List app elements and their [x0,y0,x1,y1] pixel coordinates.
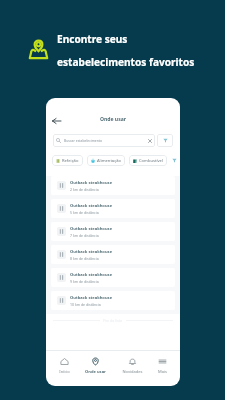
button[interactable]: Onde usar [83,357,108,375]
staticText: Outback steakhouse [70,203,113,209]
staticText: Outback steakhouse [70,295,113,301]
staticText: 2 km de distância [70,187,99,192]
staticText: Buscar estabelecimento [64,138,103,143]
button[interactable]: Mais [156,357,169,375]
button[interactable]: Voltar [50,115,62,127]
button[interactable]: Outback steakhouse [51,291,175,310]
button[interactable]: Outback steakhouse [51,268,175,287]
button[interactable]: Mais filtros [170,156,179,165]
button[interactable]: Novidades [120,357,145,375]
button[interactable]: Início [57,357,72,375]
staticText: Outback steakhouse [70,226,113,232]
staticText: 5 km de distância [70,210,99,215]
staticText: Combustível [139,158,163,164]
staticText: Onde usar [85,369,106,375]
staticText: Outback steakhouse [70,180,113,186]
staticText: Alimentação [97,158,121,164]
button[interactable]: Filtrar [157,134,173,147]
button[interactable]: Alimentação [87,155,125,166]
staticText: 9 km de distância [70,279,99,284]
button[interactable]: Outback steakhouse [51,176,175,195]
staticText: estabelecimentos favoritos [57,55,195,69]
button[interactable]: Refeição [52,155,83,166]
staticText: Encontre seus [57,32,128,46]
button[interactable]: Combustível [129,155,167,166]
button[interactable]: Outback steakhouse [51,245,175,264]
staticText: Novidades [122,369,143,375]
staticText: 10 km de distância [70,302,101,307]
staticText: Outback steakhouse [70,249,113,255]
staticText: Onde usar [46,116,180,123]
staticText: Fim da lista [103,318,123,323]
staticText: Início [59,369,70,375]
staticText: Refeição [62,158,79,164]
button[interactable]: Outback steakhouse [51,222,175,241]
staticText: Outback steakhouse [70,272,113,278]
staticText: 8 km de distância [70,256,99,261]
staticText: 7 km de distância [70,233,99,238]
staticText: Mais [158,369,167,375]
button[interactable]: Outback steakhouse [51,199,175,218]
button[interactable]: Buscar estabelecimento [53,134,155,147]
